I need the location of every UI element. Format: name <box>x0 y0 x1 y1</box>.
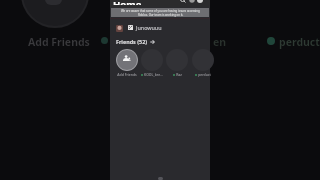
button[interactable]: Search <box>180 0 186 3</box>
staticText: Add Friends <box>117 72 137 77</box>
staticText: KOOL_bre… <box>144 72 163 77</box>
staticText: en <box>213 35 227 49</box>
staticText: perduct <box>198 72 211 77</box>
staticText: Raz <box>176 72 182 77</box>
staticText: Add Friends <box>28 35 90 49</box>
button[interactable]: Raz <box>166 49 188 76</box>
button[interactable]: perduct <box>192 49 214 76</box>
button[interactable]: Junowuuu <box>136 24 162 31</box>
button[interactable]: Robux <box>189 0 195 3</box>
button[interactable]: KOOL_bre… <box>141 49 163 76</box>
staticText: perduct <box>279 35 320 49</box>
staticText: Home <box>113 0 142 5</box>
staticText: Roblox. Our team is working on it. <box>138 13 184 17</box>
staticText: Junowuuu <box>136 24 162 31</box>
button[interactable]: Profile <box>197 0 203 3</box>
button[interactable]: Friends (52) <box>116 38 155 45</box>
staticText: Friends (52) <box>116 38 148 45</box>
button[interactable]: QR code <box>128 25 133 30</box>
button[interactable]: Add Friends <box>116 49 138 76</box>
staticText: We are aware that some of you are having… <box>121 9 200 13</box>
